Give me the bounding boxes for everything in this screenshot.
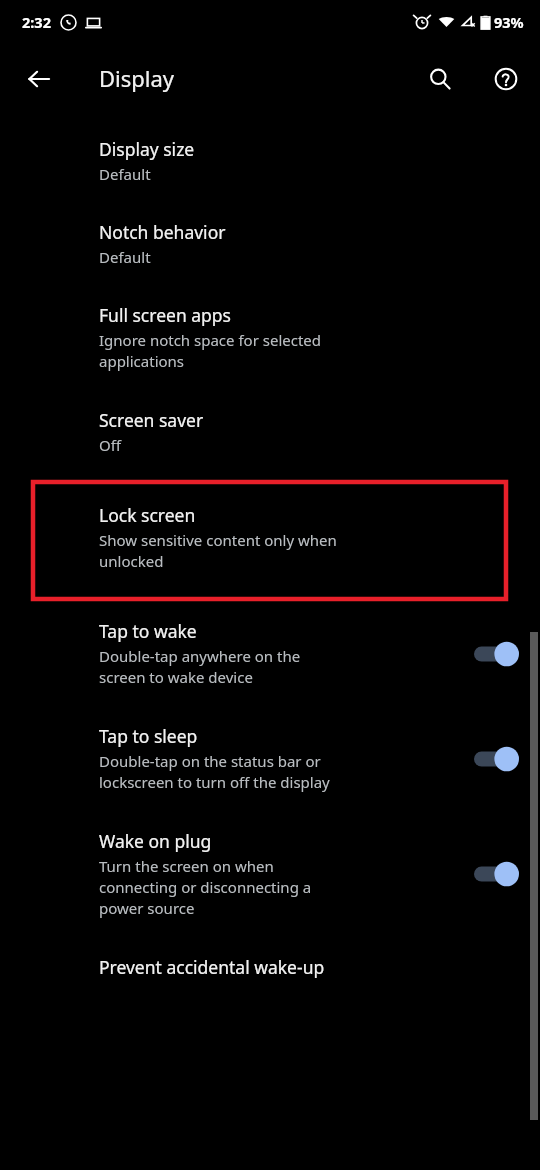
staticText: Show sensitive content only when unlocke… — [99, 530, 337, 572]
staticText: Turn the screen on when connecting or di… — [99, 856, 312, 919]
button[interactable]: Wake on plug — [0, 815, 540, 941]
staticText: Default — [99, 164, 151, 184]
staticText: Default — [99, 247, 151, 267]
button[interactable]: Toggle — [474, 640, 520, 668]
staticText: Full screen apps — [99, 303, 231, 327]
button[interactable]: Search — [416, 55, 464, 103]
staticText: Lock screen — [99, 503, 196, 527]
button[interactable]: Notch behavior — [0, 206, 540, 289]
staticText: 93% — [494, 12, 524, 32]
staticText: Prevent accidental wake-up — [99, 955, 325, 979]
staticText: Wake on plug — [99, 829, 212, 853]
staticText: Ignore notch space for selected applicat… — [99, 330, 322, 372]
button[interactable]: Lock screen — [0, 481, 540, 601]
staticText: Tap to wake — [99, 619, 197, 643]
button[interactable]: Back — [15, 55, 63, 103]
staticText: Screen saver — [99, 408, 204, 432]
staticText: Display — [99, 63, 175, 93]
staticText: Double-tap anywhere on the screen to wak… — [99, 646, 301, 688]
button[interactable]: Help — [482, 55, 530, 103]
button[interactable]: Tap to sleep — [0, 710, 540, 815]
button[interactable]: Screen saver — [0, 394, 540, 481]
button[interactable]: Toggle — [474, 860, 520, 888]
button[interactable]: Display size — [0, 123, 540, 206]
staticText: Notch behavior — [99, 220, 226, 244]
staticText: Off — [99, 435, 122, 455]
button[interactable]: Prevent accidental wake-up — [0, 941, 540, 989]
button[interactable]: Full screen apps — [0, 289, 540, 394]
staticText: Display size — [99, 137, 195, 161]
staticText: Tap to sleep — [99, 724, 198, 748]
staticText: Double-tap on the status bar or lockscre… — [99, 751, 330, 793]
staticText: 2:32 — [22, 12, 51, 32]
button[interactable]: Toggle — [474, 745, 520, 773]
button[interactable]: Tap to wake — [0, 601, 540, 710]
